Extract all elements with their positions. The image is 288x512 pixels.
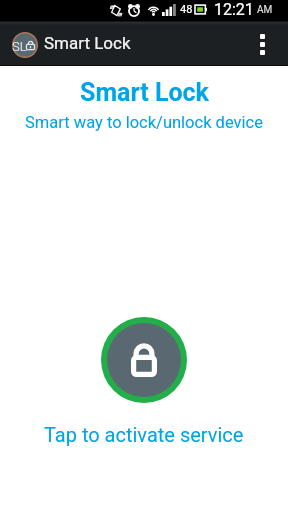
- staticText: 48: [180, 3, 193, 16]
- staticText: AM: [257, 4, 273, 16]
- button[interactable]: App icon: [12, 32, 38, 58]
- staticText: Smart Lock: [80, 78, 209, 107]
- staticText: Smart Lock: [44, 33, 131, 53]
- staticText: Tap to activate service: [44, 423, 244, 446]
- staticText: 12:21: [214, 0, 254, 19]
- staticText: Smart way to lock/unlock device: [25, 113, 263, 132]
- staticText: SL: [12, 39, 27, 54]
- button[interactable]: Activate service: [101, 317, 187, 403]
- button[interactable]: More options: [245, 22, 279, 66]
